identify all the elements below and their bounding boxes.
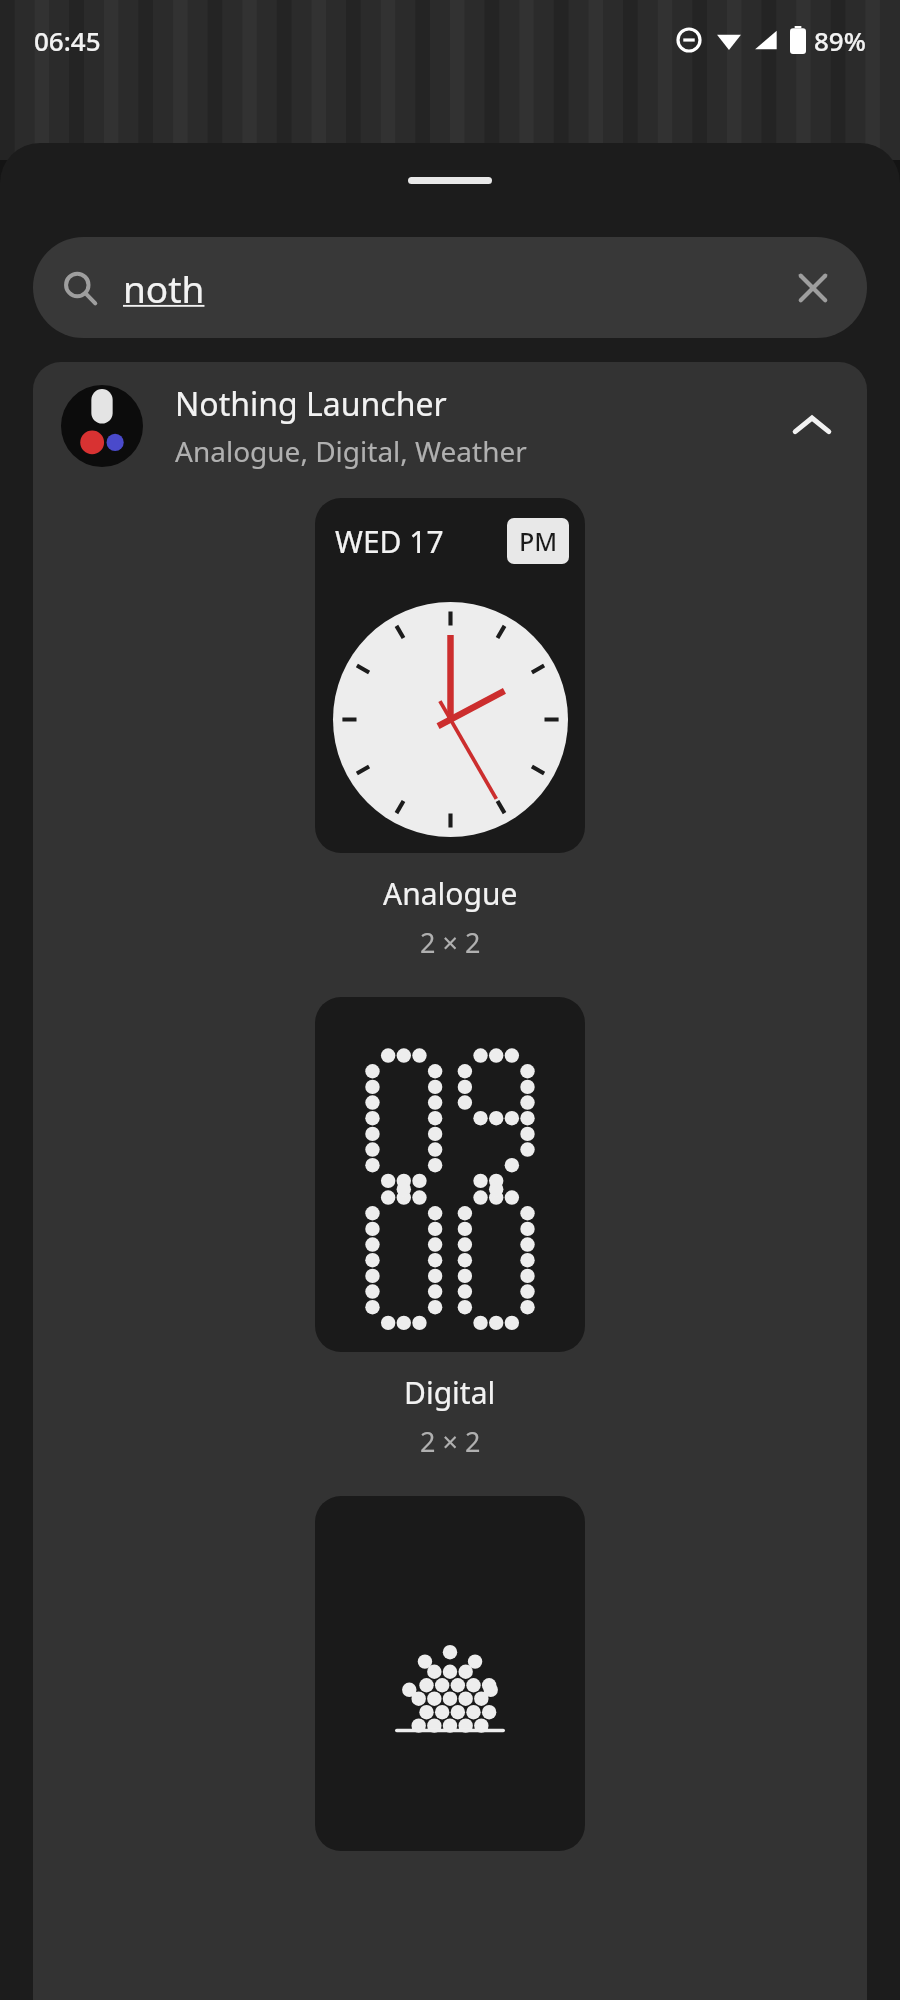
staticText: Nothing Launcher (175, 382, 447, 426)
staticText: 2 × 2 (420, 924, 481, 961)
staticText: noth (123, 263, 205, 313)
button[interactable]: Collapse (781, 395, 843, 457)
staticText: 2 × 2 (420, 1423, 481, 1460)
staticText: Digital (404, 1372, 496, 1413)
staticText: Analogue, Digital, Weather (175, 432, 527, 470)
staticText: PM (519, 524, 558, 558)
staticText: 89% (814, 23, 866, 58)
staticText: Analogue (383, 873, 518, 914)
button[interactable]: Digital clock widget (315, 997, 585, 1352)
button[interactable]: Nothing Launcher (33, 362, 867, 490)
staticText: WED 17 (335, 521, 444, 562)
button[interactable]: Analogue clock widget (315, 498, 585, 853)
button[interactable]: Clear search (789, 264, 837, 312)
button[interactable]: noth (33, 237, 867, 338)
button[interactable]: Weather widget (315, 1496, 585, 1851)
staticText: 06:45 (34, 23, 101, 58)
